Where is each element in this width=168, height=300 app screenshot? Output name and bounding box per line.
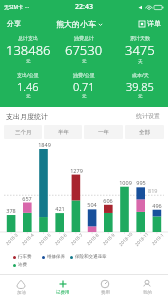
- button[interactable]: 三个月: [4, 125, 42, 139]
- staticText: 421: [55, 205, 65, 212]
- staticText: 熊大的小车: [56, 19, 96, 29]
- button[interactable]: 详单: [137, 17, 163, 30]
- staticText: 天: [138, 59, 143, 65]
- staticText: 2018-8: [85, 232, 100, 246]
- staticText: 504: [87, 201, 97, 208]
- staticText: 半年: [58, 129, 69, 136]
- staticText: 详单: [147, 19, 161, 28]
- staticText: 995: [136, 179, 146, 186]
- staticText: 1009: [119, 179, 132, 186]
- staticText: 2019-1: [150, 232, 165, 246]
- button[interactable]: 半年: [44, 125, 82, 139]
- staticText: 我的: [143, 290, 152, 296]
- staticText: 成本/天: [132, 72, 149, 79]
- staticText: 油费: [18, 262, 27, 268]
- staticText: 行车费: [18, 254, 32, 260]
- staticText: 全部: [139, 129, 150, 136]
- staticText: 元: [26, 59, 31, 65]
- staticText: 2018-9: [101, 232, 116, 246]
- button[interactable]: 分享: [5, 17, 23, 30]
- staticText: 保险和交通违章: [75, 254, 107, 260]
- staticText: 三个月: [15, 129, 32, 136]
- staticText: ···: [25, 4, 30, 11]
- staticText: 元: [138, 94, 143, 100]
- staticText: 496: [152, 202, 162, 209]
- button[interactable]: 加油: [0, 275, 42, 300]
- staticText: 1.46: [17, 79, 39, 94]
- staticText: 2018-6: [53, 232, 68, 246]
- staticText: 元: [82, 59, 87, 65]
- staticText: 1849: [38, 141, 51, 148]
- button[interactable]: 一年: [84, 125, 123, 139]
- staticText: 2018-7: [69, 232, 84, 246]
- staticText: 378: [6, 207, 16, 214]
- button[interactable]: 记费用: [42, 275, 84, 300]
- staticText: 无SIM卡: [4, 4, 23, 11]
- staticText: 记费用: [56, 290, 70, 296]
- staticText: 2018-5: [37, 232, 52, 246]
- staticText: 2018-4: [20, 232, 35, 246]
- staticText: 2018-11: [133, 231, 150, 247]
- staticText: 22:43: [75, 2, 93, 12]
- staticText: 油费总计: [74, 35, 94, 41]
- staticText: 1279: [70, 167, 83, 174]
- staticText: 138486: [6, 41, 51, 59]
- staticText: 元: [82, 94, 87, 100]
- staticText: 支出月度统计: [6, 112, 48, 121]
- staticText: 一年: [98, 129, 109, 136]
- staticText: 维修保养: [47, 254, 65, 260]
- staticText: 657: [22, 195, 32, 202]
- button[interactable]: 费用: [84, 275, 126, 300]
- button[interactable]: 全部: [125, 125, 164, 139]
- staticText: 分享: [7, 19, 21, 28]
- staticText: 819: [148, 187, 158, 194]
- staticText: 39.85: [126, 79, 154, 94]
- staticText: 元: [26, 94, 31, 100]
- staticText: 加油: [17, 290, 26, 296]
- button[interactable]: 统计设置: [134, 110, 162, 122]
- staticText: 67530: [65, 41, 103, 59]
- staticText: 0.71: [73, 79, 95, 94]
- staticText: 油费/公里: [73, 72, 95, 79]
- staticText: 累计天数: [130, 35, 150, 41]
- staticText: 费用: [101, 290, 110, 296]
- staticText: 2018-10: [117, 231, 134, 247]
- staticText: 2018-3: [4, 232, 19, 246]
- staticText: 3475: [125, 41, 155, 59]
- staticText: 606: [103, 197, 113, 204]
- button[interactable]: 熊大的小车: [54, 17, 105, 31]
- button[interactable]: 我的: [126, 275, 168, 300]
- staticText: 支出/公里: [17, 72, 39, 79]
- staticText: 统计设置: [136, 112, 160, 120]
- staticText: 总计支出: [18, 35, 38, 41]
